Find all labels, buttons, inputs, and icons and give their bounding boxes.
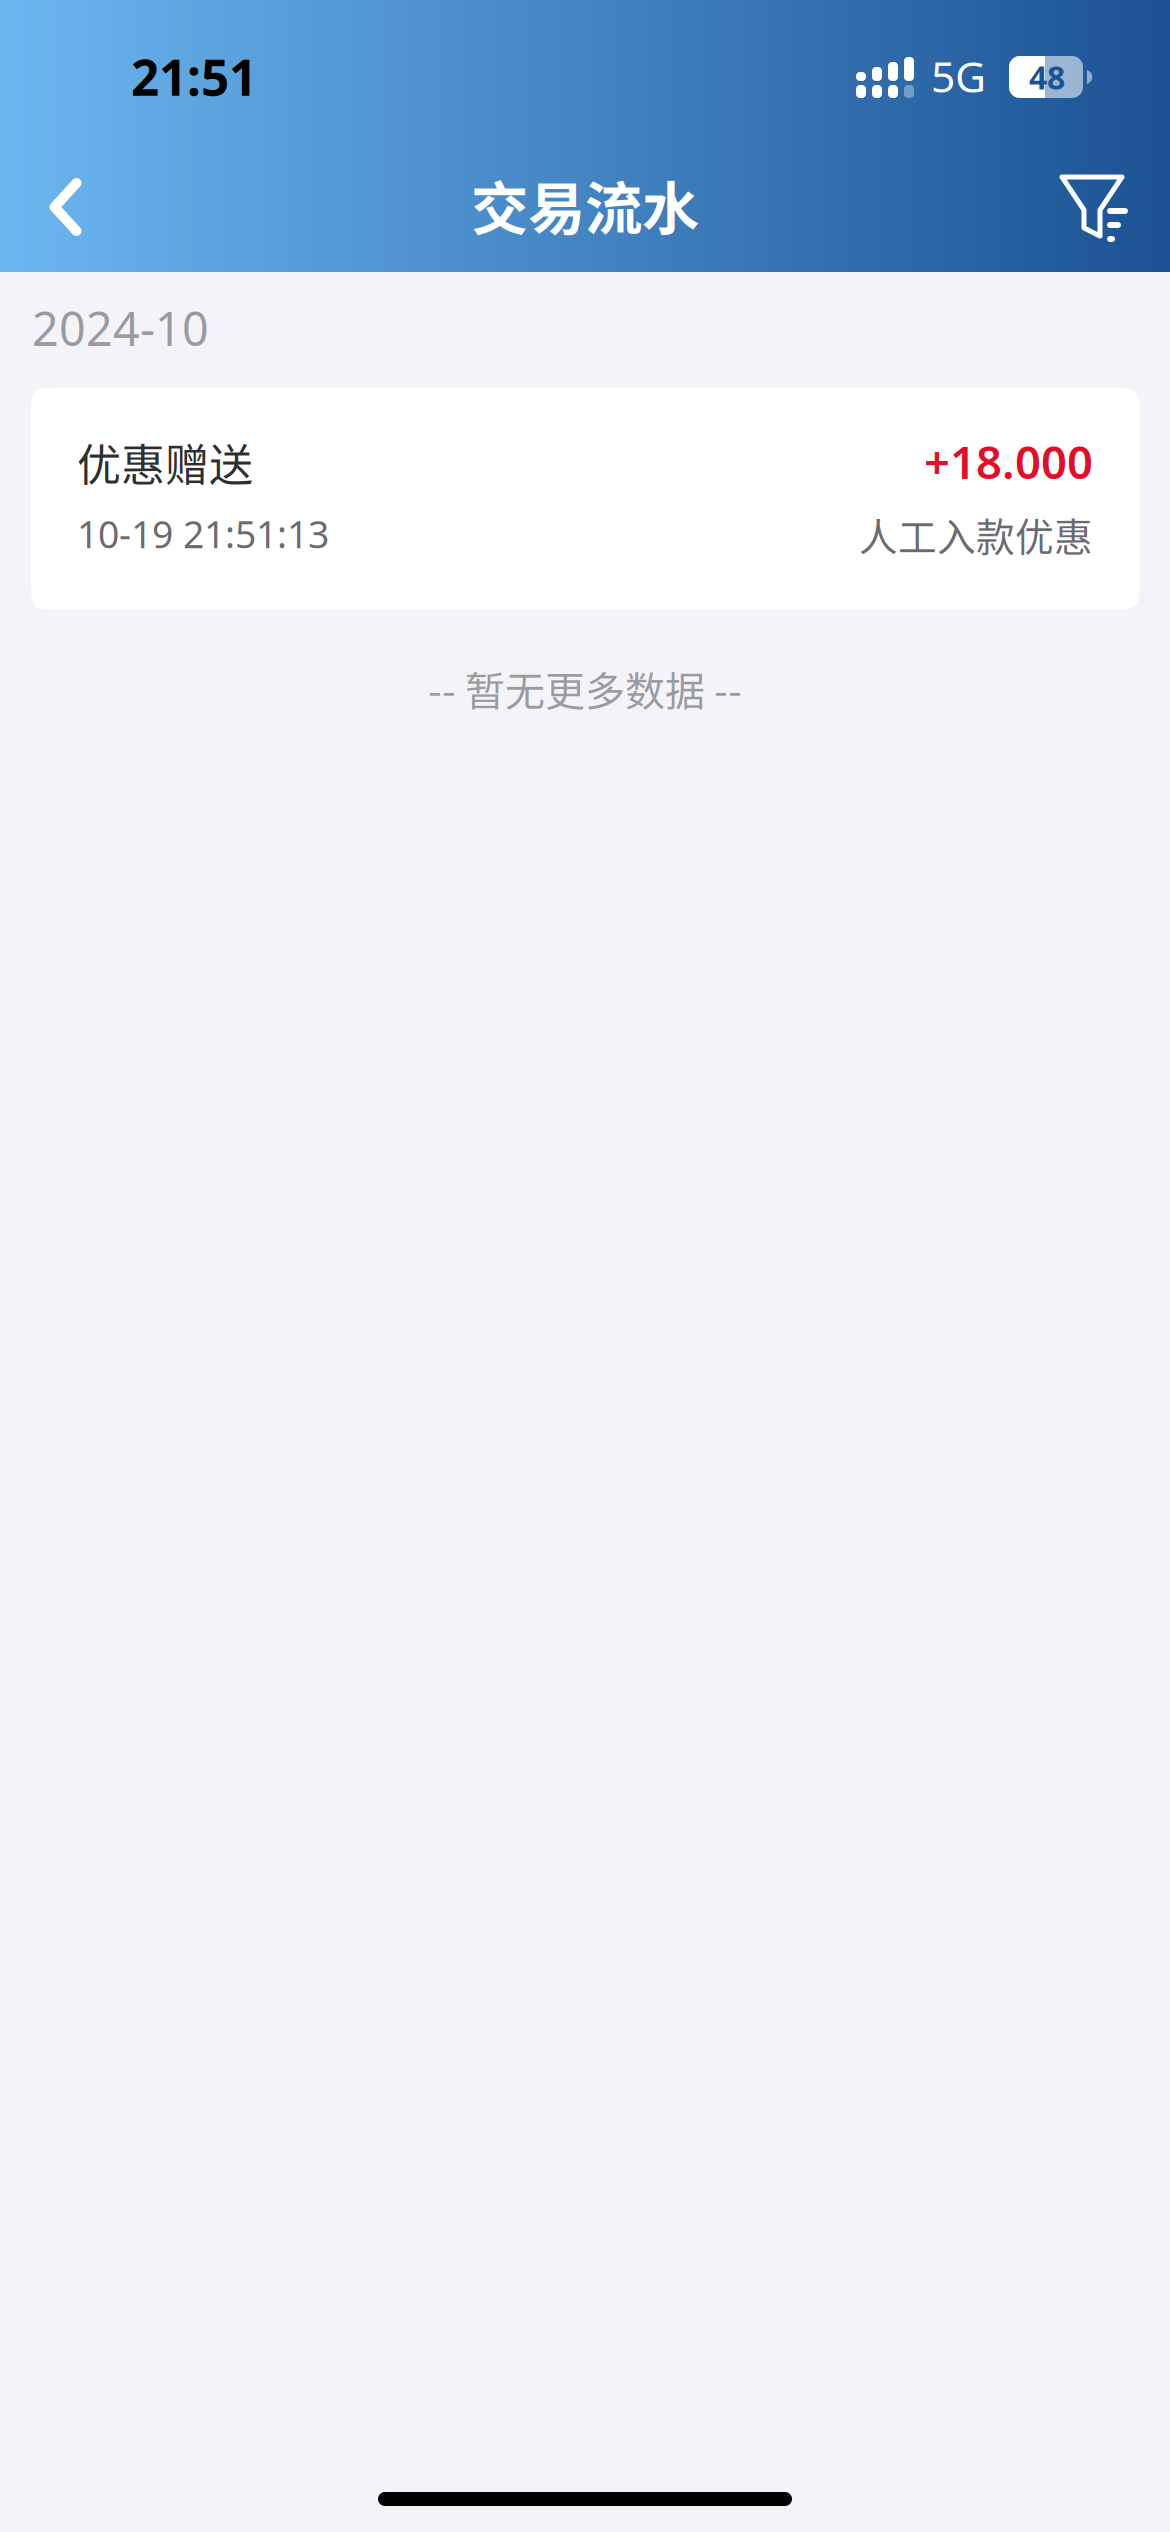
staticText: 48 [1029, 55, 1065, 99]
button[interactable]: Back [15, 157, 115, 257]
staticText: 交易流水 [471, 163, 699, 246]
staticText: +18.000 [924, 431, 1093, 492]
staticText: 优惠赠送 [77, 431, 253, 494]
staticText: 2024-10 [32, 296, 209, 360]
staticText: 5G [931, 47, 986, 105]
button[interactable]: 优惠赠送 [31, 388, 1139, 609]
staticText: 21:51 [131, 43, 257, 110]
staticText: 10-19 21:51:13 [77, 508, 329, 559]
staticText: -- 暂无更多数据 -- [428, 659, 742, 717]
button[interactable]: Filter [1045, 157, 1145, 257]
staticText: 人工入款优惠 [859, 506, 1093, 562]
